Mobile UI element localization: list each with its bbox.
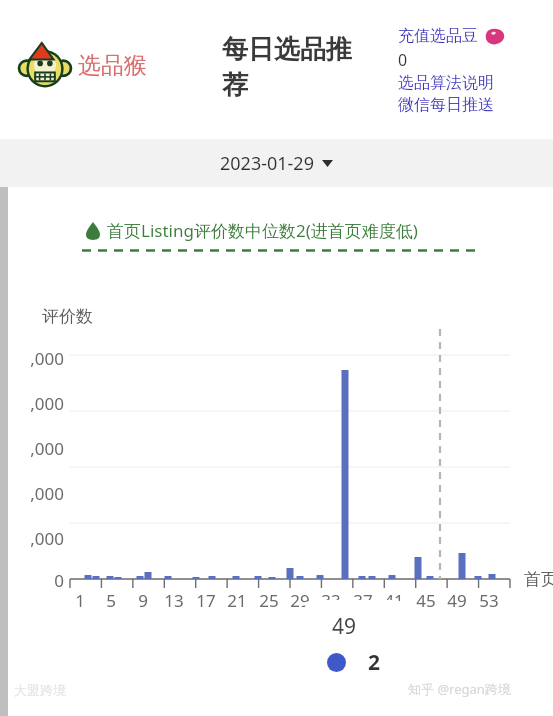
- staticText: 大盟跨境: [14, 682, 66, 698]
- staticText: 41: [380, 589, 408, 612]
- staticText: 选品猴: [78, 51, 147, 80]
- staticText: 0: [398, 49, 408, 71]
- staticText: 2023-01-29: [220, 151, 314, 176]
- staticText: 21: [223, 589, 251, 612]
- button[interactable]: 2023-01-29: [212, 147, 341, 180]
- other: 选品豆: [485, 28, 505, 45]
- staticText: 13: [160, 589, 188, 612]
- other: 选品猴 logo: [18, 38, 72, 92]
- staticText: 首页Listing评价数中位数2(进首页难度低): [107, 219, 418, 242]
- staticText: 33: [317, 589, 345, 612]
- staticText: ,000: [16, 437, 64, 460]
- staticText: 49: [443, 589, 471, 612]
- button[interactable]: 选品猴 logo: [18, 38, 147, 92]
- staticText: 5: [97, 589, 125, 612]
- button[interactable]: 49: [305, 600, 403, 688]
- staticText: 49: [332, 612, 357, 641]
- staticText: ,000: [16, 347, 64, 370]
- staticText: 首页: [524, 569, 553, 590]
- button[interactable]: 每日选品推荐: [222, 33, 374, 102]
- staticText: 微信每日推送: [398, 95, 494, 115]
- staticText: 37: [349, 589, 377, 612]
- staticText: 2: [368, 648, 381, 677]
- staticText: 每日选品推荐: [222, 33, 374, 102]
- staticText: 1: [66, 589, 94, 612]
- staticText: 45: [412, 589, 440, 612]
- button[interactable]: 充值选品豆: [398, 26, 505, 46]
- button[interactable]: 选品算法说明: [398, 73, 494, 93]
- staticText: 17: [192, 589, 220, 612]
- staticText: ,000: [16, 482, 64, 505]
- button[interactable]: 微信每日推送: [398, 95, 494, 115]
- staticText: ,000: [16, 527, 64, 550]
- staticText: 评价数: [42, 306, 93, 327]
- staticText: 知乎 @regan跨境: [408, 680, 511, 698]
- staticText: 充值选品豆: [398, 26, 478, 46]
- staticText: 29: [286, 589, 314, 612]
- staticText: 选品算法说明: [398, 73, 494, 93]
- staticText: 0: [38, 569, 64, 592]
- staticText: 9: [129, 589, 157, 612]
- staticText: 25: [255, 589, 283, 612]
- staticText: ,000: [16, 392, 64, 415]
- staticText: 53: [475, 589, 503, 612]
